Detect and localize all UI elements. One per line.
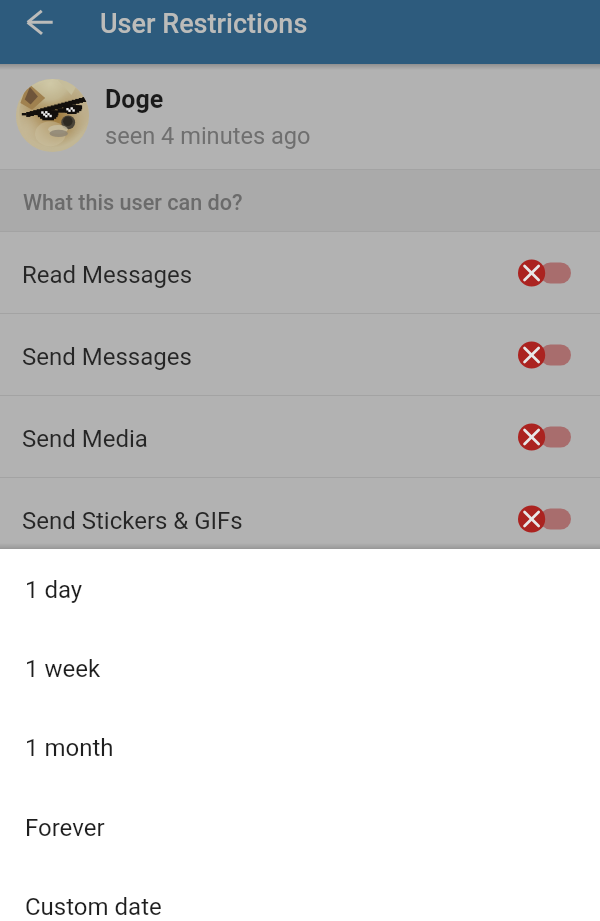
button[interactable]: Read Messages [0, 232, 600, 314]
button[interactable]: 1 month [0, 732, 600, 811]
staticText: User Restrictions [100, 8, 308, 40]
staticText: Custom date [25, 893, 162, 921]
staticText: Send Messages [22, 343, 192, 371]
staticText: 1 week [25, 655, 101, 683]
staticText: Forever [25, 814, 105, 842]
staticText: 1 day [25, 576, 83, 604]
button[interactable]: 1 day [0, 574, 600, 653]
button[interactable]: 1 week [0, 653, 600, 732]
button[interactable]: Toggle Send Messages [517, 340, 573, 370]
staticText: seen 4 minutes ago [105, 122, 311, 150]
staticText: Read Messages [22, 261, 193, 289]
button[interactable]: Toggle Send Stickers & GIFs [517, 504, 573, 534]
staticText: Send Media [22, 425, 148, 453]
button[interactable]: Forever [0, 812, 600, 891]
button[interactable]: Toggle Read Messages [517, 258, 573, 288]
button[interactable]: Send Media [0, 396, 600, 478]
staticText: What this user can do? [23, 190, 243, 215]
button[interactable]: Doge [0, 64, 600, 169]
button[interactable]: Custom date [0, 891, 600, 921]
staticText: Doge [105, 85, 164, 114]
button[interactable]: Send Messages [0, 314, 600, 396]
staticText: Send Stickers & GIFs [22, 507, 243, 535]
button[interactable]: Send Stickers & GIFs [0, 478, 600, 560]
button[interactable]: Toggle Send Media [517, 422, 573, 452]
button[interactable]: Back [12, 0, 68, 50]
staticText: 1 month [25, 734, 114, 762]
